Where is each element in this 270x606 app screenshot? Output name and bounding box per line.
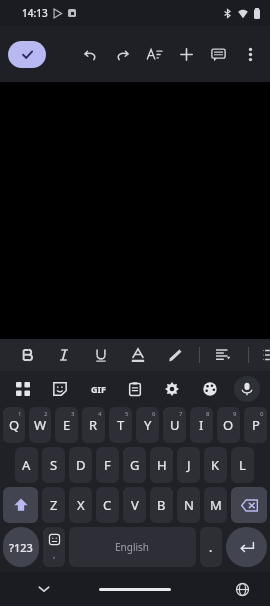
button[interactable]: Enter [226, 527, 267, 567]
staticText: D [76, 456, 86, 474]
button[interactable]: R [82, 407, 105, 443]
staticText: 2 [44, 410, 48, 418]
button[interactable]: P [244, 407, 267, 443]
button[interactable]: Stickers [47, 376, 73, 402]
staticText: J [187, 456, 191, 474]
button[interactable]: Z [42, 487, 65, 523]
button[interactable]: O [217, 407, 240, 443]
staticText: 6 [152, 410, 156, 418]
staticText: 3 [71, 410, 75, 418]
button[interactable]: J [177, 447, 200, 483]
button[interactable]: Alignment [212, 344, 234, 366]
staticText: K [211, 456, 220, 474]
button[interactable]: K [204, 447, 227, 483]
button[interactable]: Shift [3, 487, 38, 523]
button[interactable]: S [42, 447, 65, 483]
button[interactable]: W [29, 407, 51, 443]
staticText: 7 [179, 410, 183, 418]
button[interactable]: ?123 [3, 527, 39, 567]
button[interactable]: Underline [90, 344, 112, 366]
button[interactable]: List [263, 344, 270, 366]
staticText: Z [50, 496, 58, 514]
button[interactable]: Backspace [231, 487, 267, 523]
button[interactable]: F [96, 447, 119, 483]
staticText: P [252, 416, 260, 434]
button[interactable]: Bold [16, 344, 38, 366]
staticText: N [184, 496, 194, 514]
staticText: English [115, 540, 150, 554]
staticText: R [89, 416, 98, 434]
button[interactable]: Y [136, 407, 159, 443]
staticText: O [223, 416, 234, 434]
button[interactable]: Change language [230, 577, 254, 601]
button[interactable]: Redo [106, 38, 138, 70]
button[interactable]: Settings [159, 376, 185, 402]
button[interactable]: . [200, 527, 222, 567]
staticText: X [77, 496, 85, 514]
staticText: 9 [233, 410, 237, 418]
button[interactable]: U [163, 407, 186, 443]
staticText: C [103, 496, 112, 514]
button[interactable]: E [55, 407, 78, 443]
button[interactable]: L [231, 447, 254, 483]
staticText: V [131, 496, 139, 514]
staticText: , [53, 548, 56, 560]
button[interactable]: V [123, 487, 146, 523]
staticText: L [239, 456, 246, 474]
button[interactable]: Hide keyboard [32, 577, 56, 601]
staticText: E [63, 416, 71, 434]
staticText: 1 [18, 410, 22, 418]
staticText: ?123 [9, 540, 33, 555]
button[interactable]: Undo [74, 38, 106, 70]
button[interactable]: N [177, 487, 200, 523]
button[interactable]: M [204, 487, 227, 523]
button[interactable]: G [123, 447, 146, 483]
button[interactable]: More options [234, 38, 266, 70]
button[interactable]: Done [8, 41, 46, 68]
button[interactable]: Themes [197, 376, 223, 402]
button[interactable]: English [69, 527, 196, 567]
staticText: T [117, 416, 125, 434]
button[interactable]: C [96, 487, 119, 523]
button[interactable]: Highlight [164, 344, 186, 366]
button[interactable]: Q [3, 407, 25, 443]
button[interactable]: H [150, 447, 173, 483]
staticText: 8 [206, 410, 210, 418]
button[interactable]: X [69, 487, 92, 523]
button[interactable]: B [150, 487, 173, 523]
button[interactable]: Format [138, 38, 170, 70]
button[interactable]: Emoji [43, 527, 65, 567]
staticText: F [104, 456, 111, 474]
button[interactable]: Italic [53, 344, 75, 366]
staticText: A [22, 456, 31, 474]
button[interactable]: Text color [127, 344, 149, 366]
staticText: I [199, 416, 204, 434]
staticText: B [157, 496, 166, 514]
button[interactable]: GIF [85, 376, 111, 402]
staticText: 0 [260, 410, 264, 418]
button[interactable]: I [190, 407, 213, 443]
staticText: 4 [98, 410, 102, 418]
staticText: GIF [91, 383, 106, 395]
staticText: . [209, 539, 213, 555]
staticText: M [210, 496, 222, 514]
staticText: S [50, 456, 58, 474]
staticText: G [130, 456, 140, 474]
button[interactable]: Apps [10, 376, 36, 402]
staticText: W [34, 416, 47, 434]
button[interactable]: A [15, 447, 38, 483]
button[interactable]: Clipboard [122, 376, 148, 402]
button[interactable]: D [69, 447, 92, 483]
staticText: U [170, 416, 180, 434]
staticText: Y [144, 416, 152, 434]
staticText: H [157, 456, 167, 474]
button[interactable]: Add [170, 38, 202, 70]
staticText: 14:13 [22, 6, 48, 20]
staticText: Q [9, 416, 20, 434]
button[interactable]: Voice input [234, 376, 260, 402]
button[interactable]: Comment [202, 38, 234, 70]
staticText: 5 [125, 410, 129, 418]
button[interactable]: T [109, 407, 132, 443]
